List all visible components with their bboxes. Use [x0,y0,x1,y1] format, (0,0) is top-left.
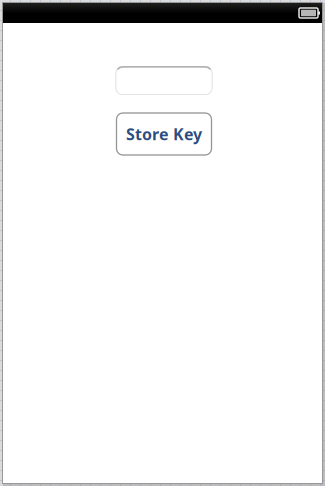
staticText: Store Key [126,123,202,145]
button[interactable]: Key text field [115,66,212,95]
button[interactable]: Store Key [116,113,211,155]
